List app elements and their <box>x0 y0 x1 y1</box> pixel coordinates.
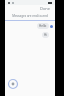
button[interactable]: Hello <box>37 23 49 29</box>
button[interactable]: Done <box>39 5 52 12</box>
staticText: Done <box>40 6 51 11</box>
button[interactable]: Hi <box>42 32 49 38</box>
staticText: Messages are end-to-end <box>5 14 55 18</box>
button[interactable]: Record <box>8 79 18 89</box>
staticText: Hello <box>39 24 47 28</box>
staticText: Hi <box>44 33 47 37</box>
